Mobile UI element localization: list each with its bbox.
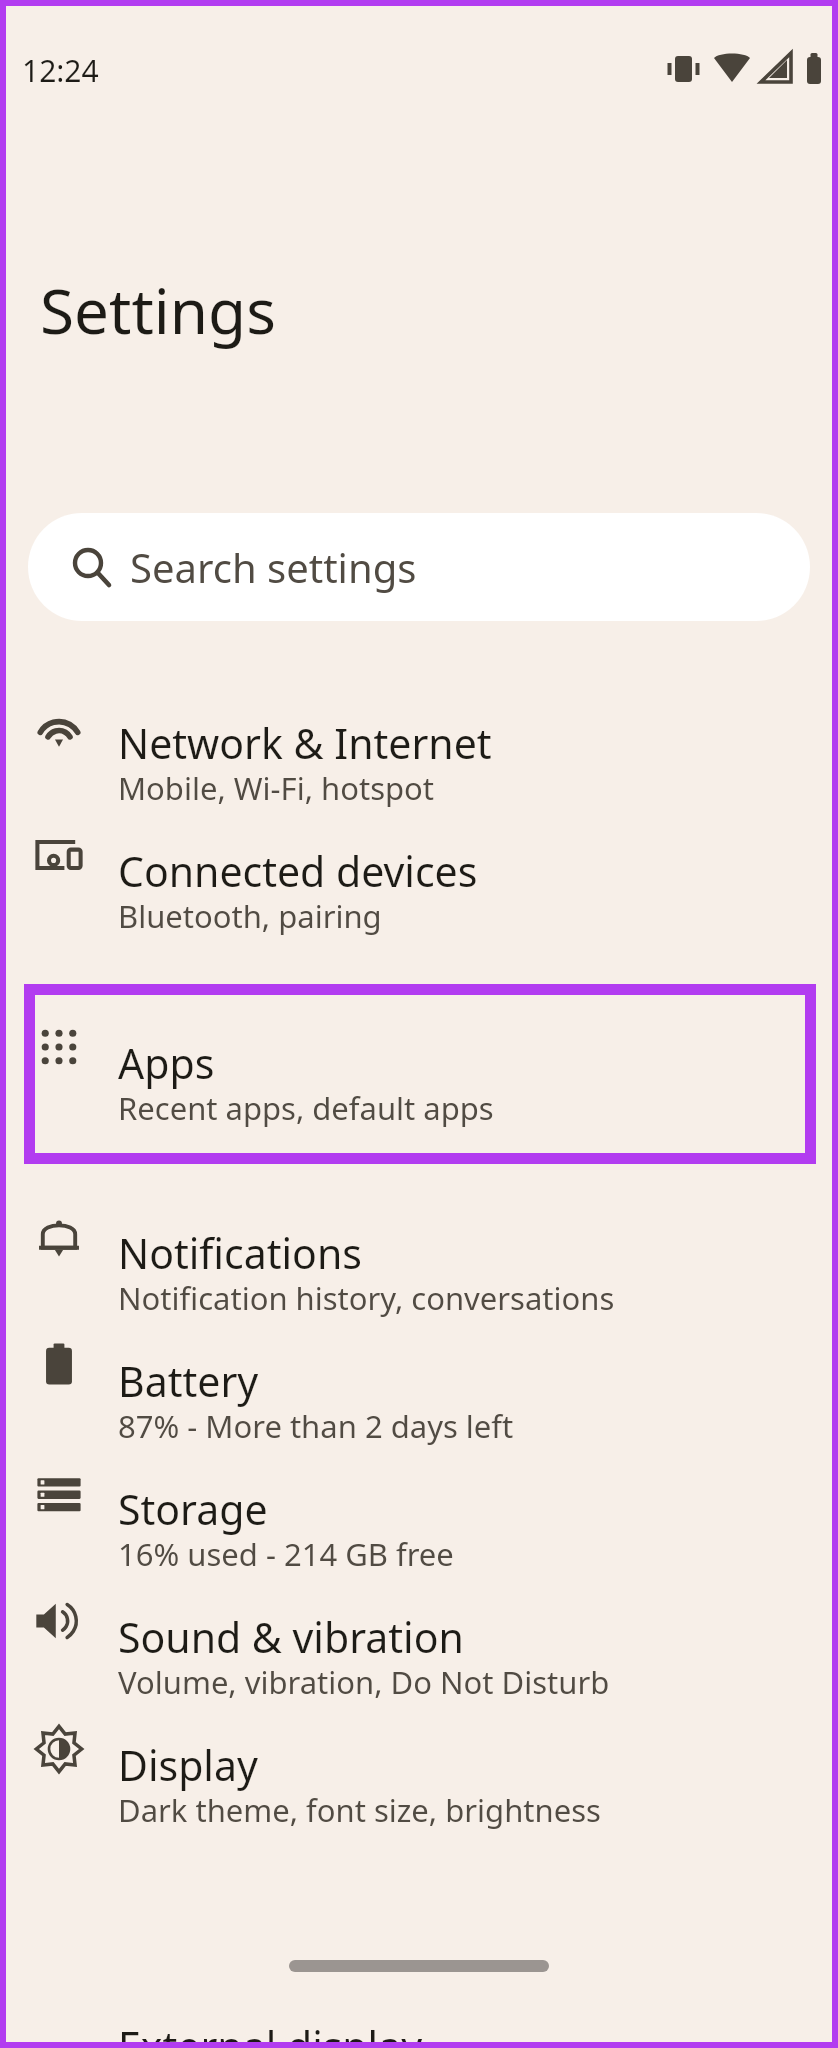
button[interactable]: Battery	[0, 1301, 838, 1429]
staticText: Battery	[118, 1353, 259, 1409]
staticText: External display	[118, 2018, 423, 2048]
staticText: Search settings	[130, 540, 417, 594]
staticText: 87% - More than 2 days left	[118, 1405, 514, 1447]
staticText: Apps	[118, 1035, 215, 1091]
other: Connected devices	[32, 828, 86, 882]
other: Network & Internet	[32, 700, 86, 754]
other: Storage	[32, 1466, 86, 1520]
staticText: Bluetooth, pairing	[118, 895, 382, 937]
staticText: Notifications	[118, 1225, 362, 1281]
button[interactable]: Apps	[0, 983, 838, 1111]
staticText: 12:24	[22, 50, 99, 91]
staticText: 16% used - 214 GB free	[118, 1533, 454, 1575]
other: Sound & vibration	[32, 1594, 86, 1648]
staticText: Dark theme, font size, brightness	[118, 1789, 601, 1831]
staticText: Storage	[118, 1481, 268, 1537]
other: Battery	[32, 1338, 86, 1392]
staticText: Notification history, conversations	[118, 1277, 615, 1319]
button[interactable]: Storage	[0, 1429, 838, 1557]
staticText: Sound & vibration	[118, 1609, 464, 1665]
other: Notifications	[32, 1210, 86, 1264]
staticText: Settings	[40, 268, 276, 352]
staticText: Volume, vibration, Do Not Disturb	[118, 1661, 610, 1703]
staticText: Recent apps, default apps	[118, 1087, 494, 1129]
button[interactable]: Connected devices	[0, 791, 838, 919]
button[interactable]: Sound & vibration	[0, 1557, 838, 1685]
staticText: Network & Internet	[118, 715, 492, 771]
staticText: Mobile, Wi-Fi, hotspot	[118, 767, 435, 809]
staticText: Display	[118, 1737, 258, 1793]
button[interactable]: Notifications	[0, 1173, 838, 1301]
button[interactable]: Display	[0, 1685, 838, 1813]
button[interactable]: Network & Internet	[0, 663, 838, 791]
other: Display	[32, 1722, 86, 1776]
staticText: Connected devices	[118, 843, 478, 899]
other: Apps	[32, 1020, 86, 1074]
button[interactable]: Search settings	[28, 513, 810, 621]
